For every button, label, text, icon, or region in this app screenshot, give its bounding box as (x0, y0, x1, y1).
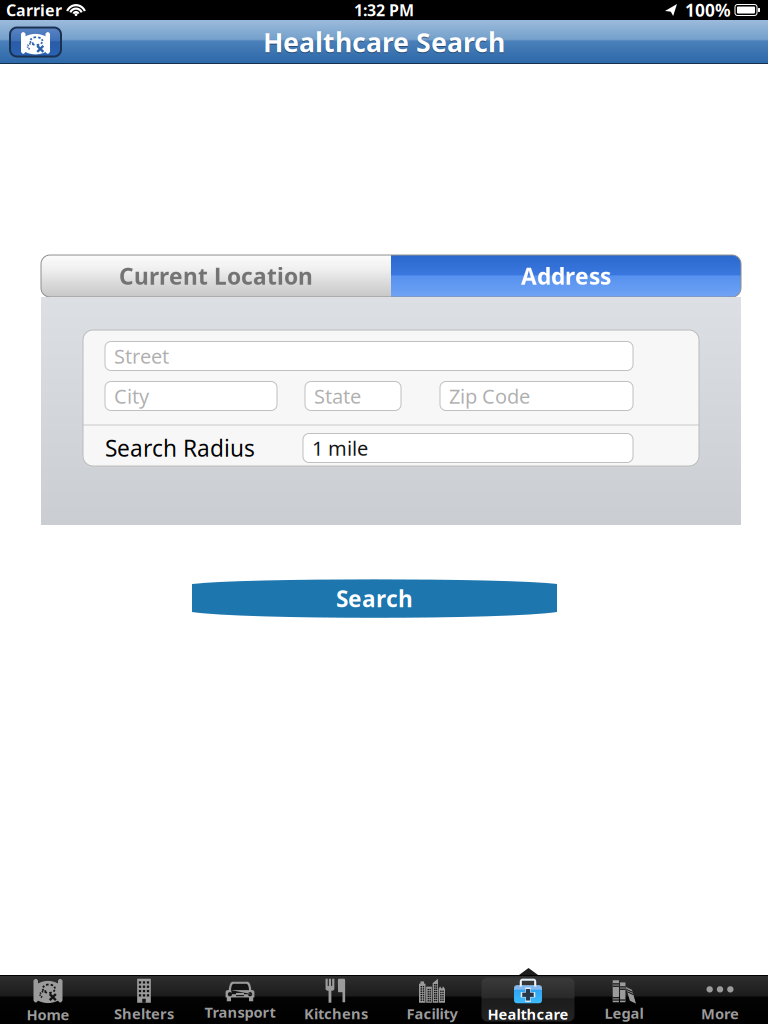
button[interactable]: Kitchens (288, 975, 384, 1024)
staticText: Zip Code (449, 383, 530, 409)
staticText: Search (336, 583, 413, 613)
button[interactable]: Home (0, 975, 96, 1024)
staticText: State (314, 383, 361, 409)
button[interactable]: Address (391, 255, 741, 297)
staticText: Search Radius (105, 433, 255, 463)
staticText: Legal (604, 1003, 643, 1023)
staticText: 1:32 PM (354, 0, 414, 21)
staticText: More (701, 1004, 739, 1023)
staticText: Current Location (119, 261, 313, 291)
staticText: City (114, 383, 149, 409)
staticText: 1 mile (312, 435, 368, 461)
staticText: Carrier (6, 0, 62, 21)
button[interactable]: More (672, 975, 768, 1024)
staticText: Shelters (114, 1004, 174, 1023)
staticText: 100% (685, 0, 731, 21)
button[interactable]: Transport (192, 975, 288, 1024)
staticText: Healthcare (487, 1004, 568, 1024)
button[interactable]: Current Location (41, 255, 391, 297)
staticText: Healthcare Search (263, 24, 505, 60)
staticText: Transport (204, 1002, 275, 1022)
button[interactable]: Search (192, 580, 557, 617)
button[interactable]: Legal (576, 975, 672, 1024)
button[interactable]: Healthcare (480, 975, 576, 1024)
button[interactable]: Shelters (96, 975, 192, 1024)
staticText: Street (114, 343, 169, 369)
staticText: Healthcare Search (263, 25, 505, 61)
staticText: Facility (406, 1004, 457, 1023)
button[interactable]: Map (7, 23, 64, 61)
staticText: Kitchens (304, 1004, 368, 1023)
button[interactable]: Facility (384, 975, 480, 1024)
staticText: Address (521, 261, 611, 291)
staticText: Home (26, 1005, 69, 1024)
